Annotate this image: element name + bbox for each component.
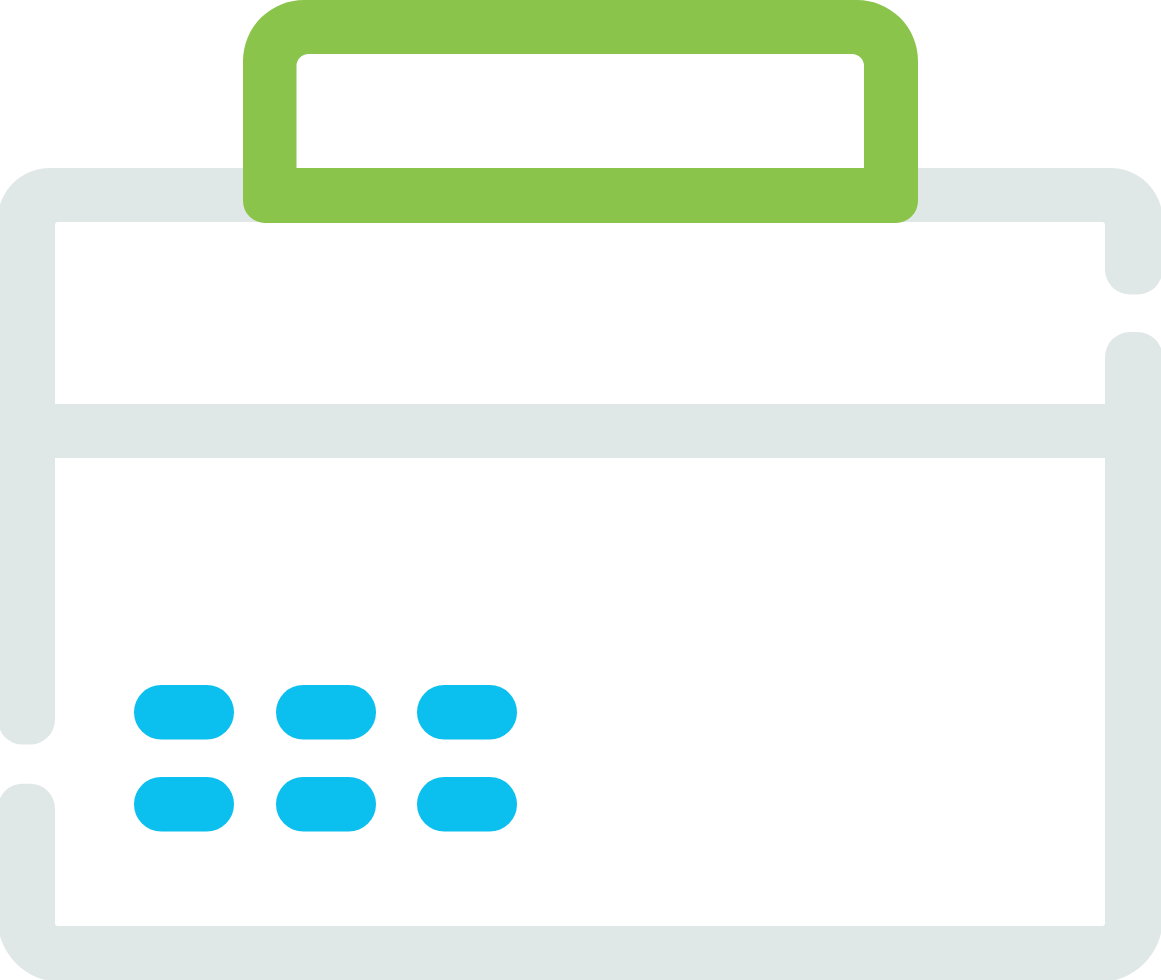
- button[interactable]: Toolbox illustration: [0, 0, 1161, 980]
